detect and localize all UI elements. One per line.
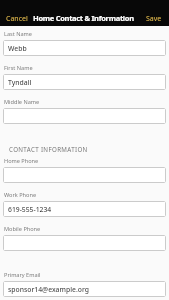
button[interactable]: sponsor14@example.org — [3, 281, 166, 297]
staticText: Cancel — [6, 14, 28, 24]
staticText: Webb — [8, 44, 27, 53]
staticText: Home Phone — [4, 157, 39, 165]
staticText: Middle Name — [4, 98, 40, 106]
button[interactable]: Save — [142, 0, 169, 26]
button[interactable]: Cancel — [0, 0, 32, 26]
staticText: Work Phone — [4, 191, 37, 199]
button[interactable] — [3, 108, 166, 124]
staticText: Mobile Phone — [4, 225, 41, 233]
staticText: Tyndall — [8, 78, 32, 87]
staticText: sponsor14@example.org — [8, 285, 89, 294]
staticText: CONTACT INFORMATION — [9, 145, 88, 153]
staticText: First Name — [4, 64, 33, 72]
staticText: 619-555-1234 — [8, 205, 52, 214]
staticText: Primary Email — [4, 271, 41, 279]
button[interactable]: 619-555-1234 — [3, 201, 166, 217]
button[interactable] — [3, 167, 166, 183]
button[interactable]: Tyndall — [3, 74, 166, 90]
button[interactable]: Webb — [3, 40, 166, 56]
staticText: Last Name — [4, 30, 32, 38]
staticText: Save — [146, 14, 162, 24]
staticText: Home Contact & Information — [33, 13, 134, 23]
button[interactable] — [3, 235, 166, 251]
